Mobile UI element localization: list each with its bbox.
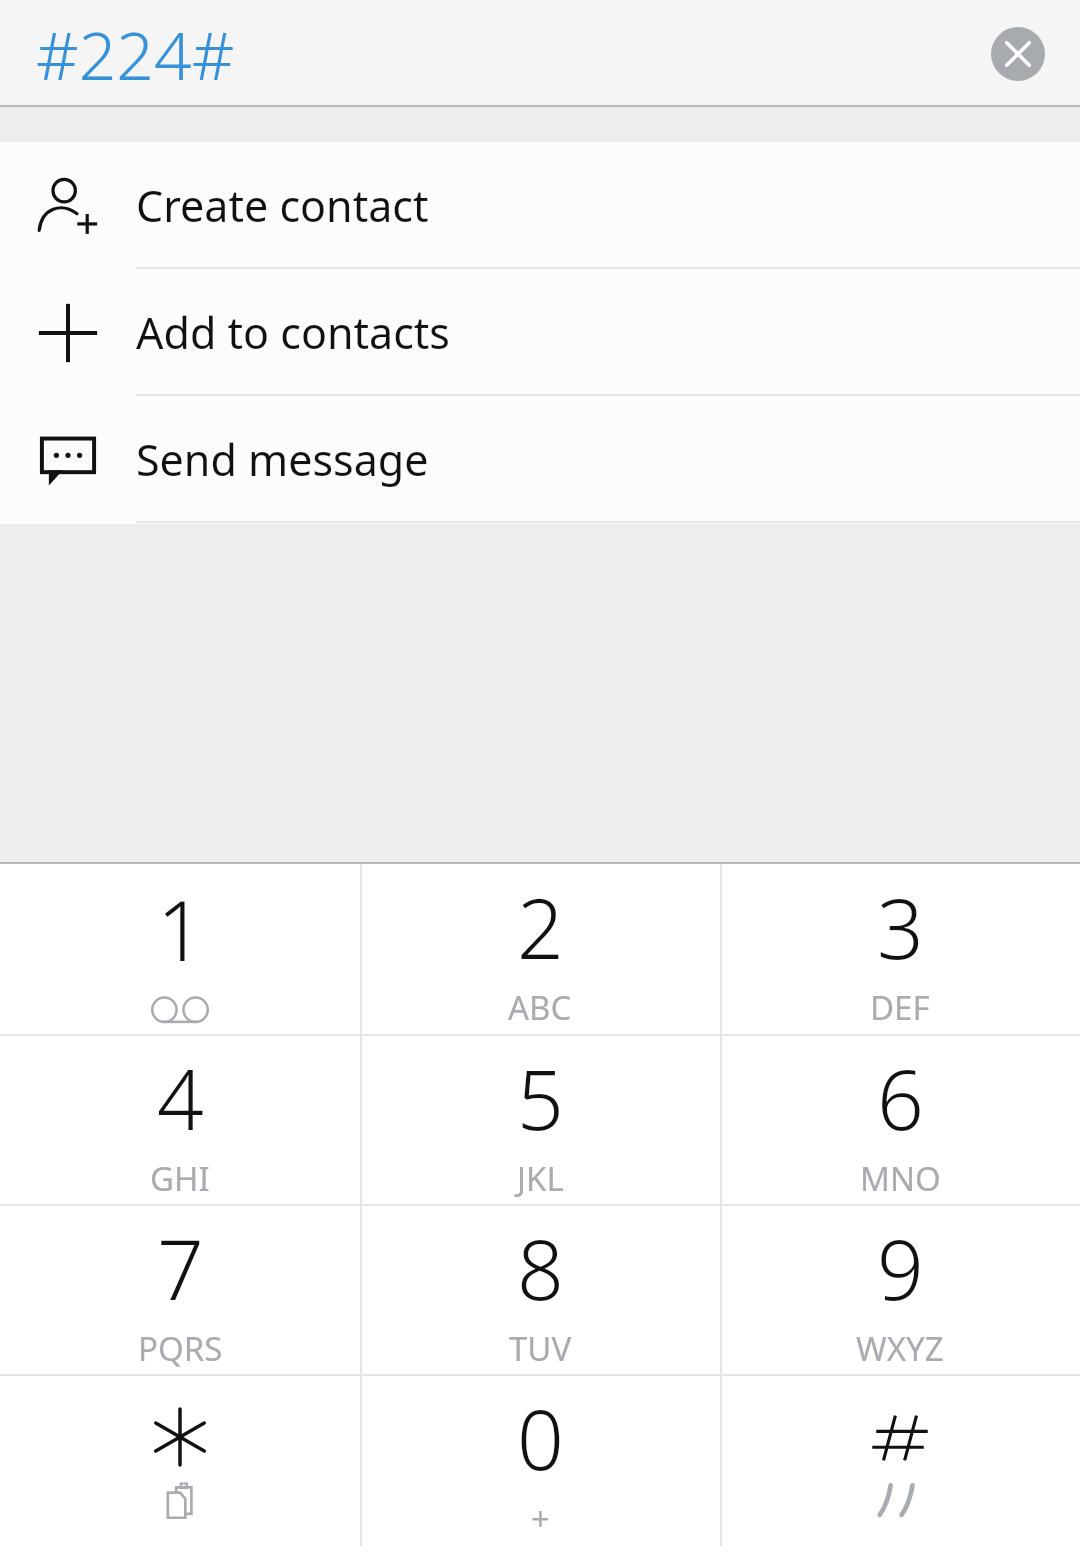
staticText: 0: [517, 1382, 564, 1494]
staticText: 5: [517, 1042, 564, 1154]
staticText: GHI: [150, 1156, 210, 1201]
button[interactable]: Send message: [0, 396, 1080, 523]
button[interactable]: 6: [720, 1036, 1080, 1206]
staticText: Send message: [136, 430, 429, 489]
button[interactable]: 1: [0, 864, 360, 1036]
button[interactable]: 2: [360, 864, 720, 1036]
staticText: JKL: [517, 1156, 564, 1201]
staticText: ABC: [508, 985, 572, 1030]
staticText: 4: [157, 1042, 204, 1154]
button[interactable]: 4: [0, 1036, 360, 1206]
staticText: PQRS: [138, 1326, 223, 1371]
staticText: Add to contacts: [136, 303, 450, 362]
button[interactable]: 0: [360, 1376, 720, 1546]
button[interactable]: Clear: [991, 27, 1045, 81]
button[interactable]: 7: [0, 1206, 360, 1376]
button[interactable]: 9: [720, 1206, 1080, 1376]
button[interactable]: Create contact: [0, 142, 1080, 269]
staticText: DEF: [870, 985, 930, 1030]
button[interactable]: 8: [360, 1206, 720, 1376]
staticText: 2: [517, 871, 564, 983]
staticText: WXYZ: [856, 1326, 944, 1371]
staticText: 3: [877, 871, 924, 983]
button[interactable]: Add to contacts: [0, 269, 1080, 396]
staticText: 9: [877, 1212, 924, 1324]
staticText: Create contact: [136, 176, 429, 235]
button[interactable]: [0, 1376, 360, 1546]
button[interactable]: [720, 1376, 1080, 1546]
staticText: 8: [517, 1212, 564, 1324]
staticText: +: [531, 1496, 550, 1541]
staticText: TUV: [509, 1326, 572, 1371]
button[interactable]: 5: [360, 1036, 720, 1206]
staticText: #224#: [36, 9, 235, 99]
staticText: 6: [877, 1042, 924, 1154]
staticText: 1: [157, 873, 204, 985]
staticText: 7: [157, 1212, 204, 1324]
staticText: MNO: [860, 1156, 941, 1201]
button[interactable]: 3: [720, 864, 1080, 1036]
